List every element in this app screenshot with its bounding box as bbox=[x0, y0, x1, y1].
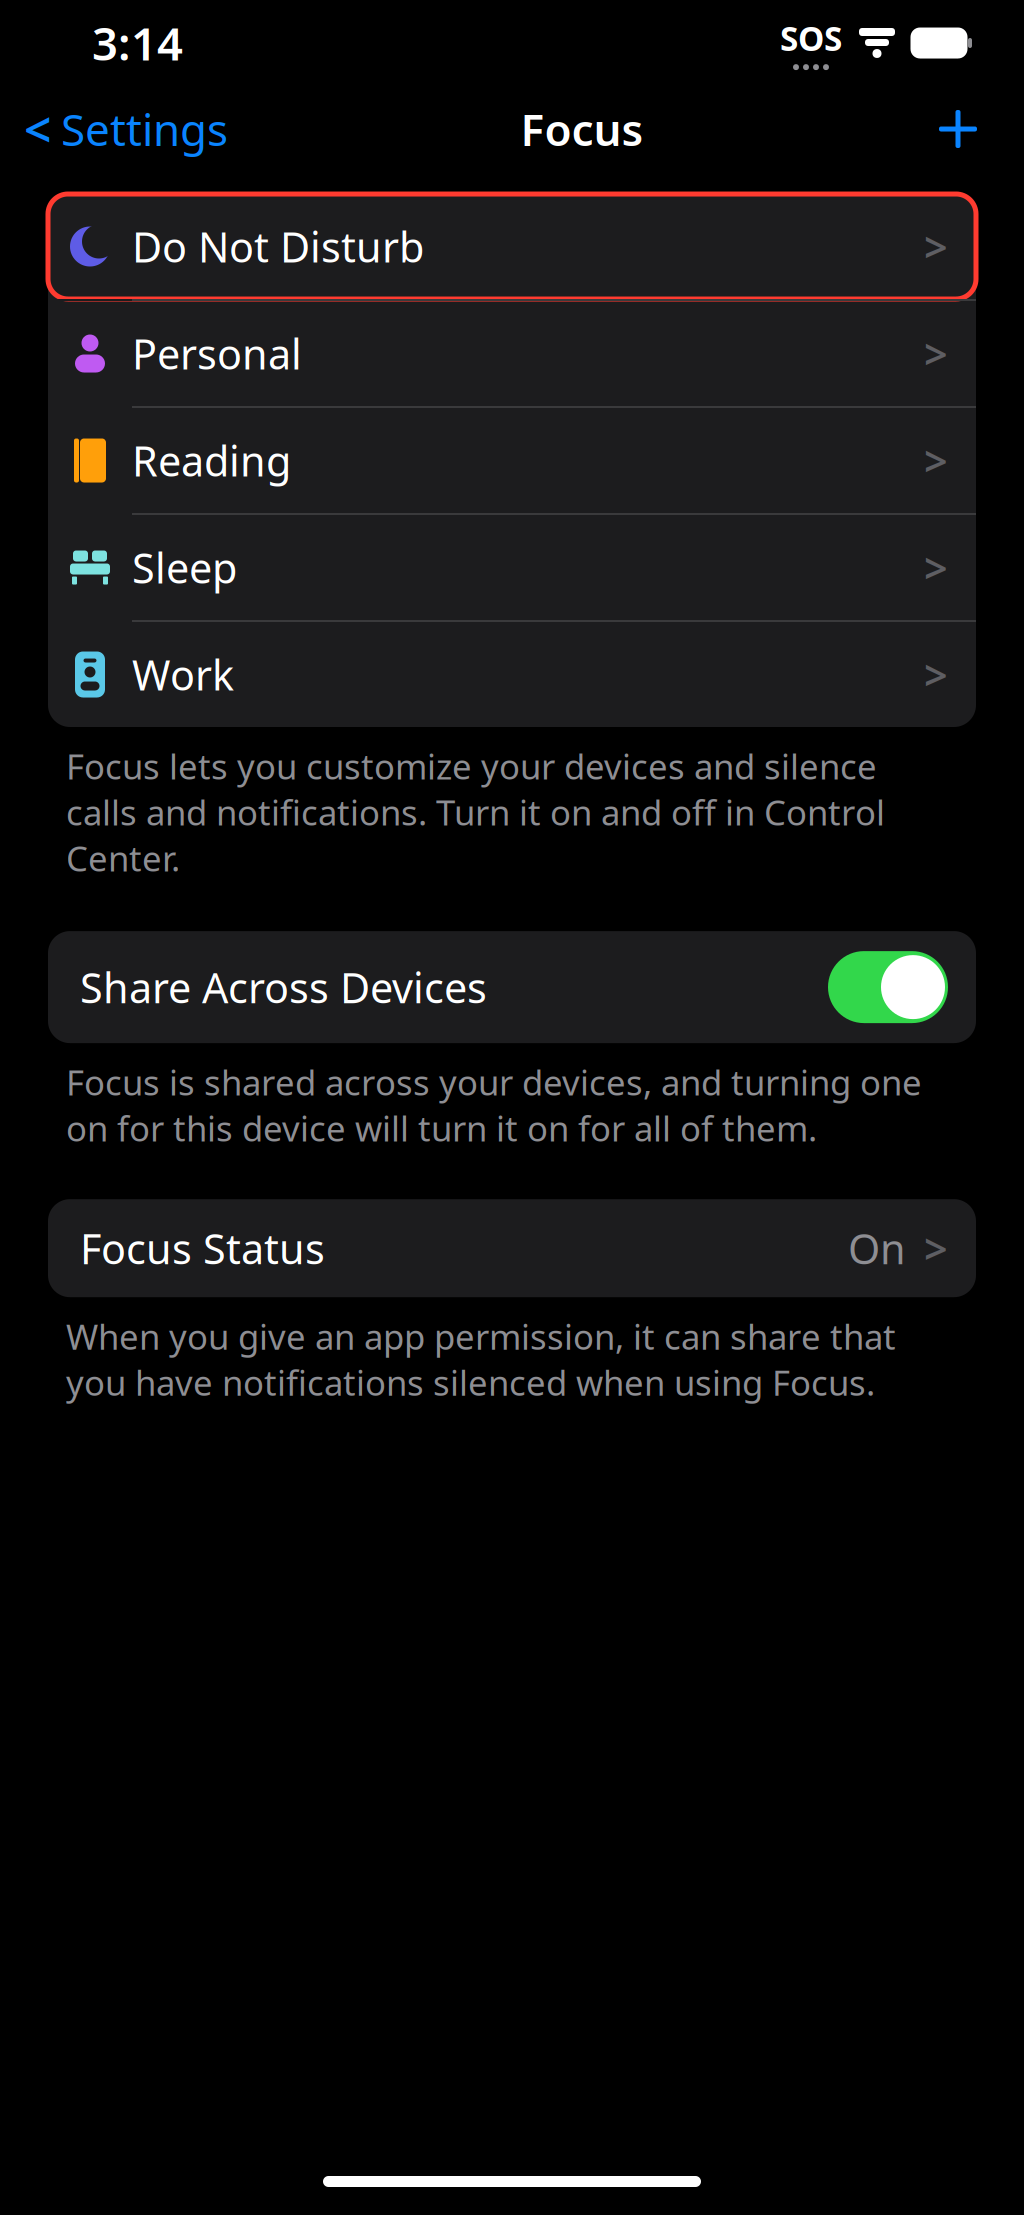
button[interactable]: Reading bbox=[48, 408, 976, 513]
staticText: Share Across Devices bbox=[80, 960, 487, 1015]
staticText: SOS bbox=[780, 16, 842, 60]
staticText: Personal bbox=[132, 326, 302, 381]
staticText: > bbox=[924, 1221, 948, 1276]
staticText: Reading bbox=[132, 433, 291, 488]
staticText: > bbox=[924, 326, 948, 381]
staticText: > bbox=[924, 219, 948, 274]
staticText: < bbox=[24, 97, 51, 161]
button[interactable]: Share Across Devices bbox=[48, 931, 976, 1043]
staticText: Focus Status bbox=[80, 1221, 325, 1276]
button[interactable]: Personal bbox=[48, 301, 976, 406]
staticText: > bbox=[924, 433, 948, 488]
staticText: Sleep bbox=[132, 540, 237, 595]
staticText: 3:14 bbox=[92, 13, 183, 73]
button[interactable]: Do Not Disturb bbox=[48, 194, 976, 299]
button[interactable]: Focus Status bbox=[48, 1199, 976, 1297]
button[interactable]: Sleep bbox=[48, 515, 976, 620]
staticText: When you give an app permission, it can … bbox=[66, 1313, 896, 1405]
staticText: Focus lets you customize your devices an… bbox=[66, 743, 885, 881]
staticText: Focus bbox=[520, 100, 643, 158]
button[interactable]: Add Focus bbox=[936, 99, 1024, 159]
staticText: Settings bbox=[61, 100, 228, 158]
staticText: Work bbox=[132, 647, 234, 702]
button[interactable]: < bbox=[0, 85, 228, 173]
staticText: On bbox=[848, 1221, 906, 1276]
button[interactable]: Work bbox=[48, 622, 976, 727]
staticText: > bbox=[924, 540, 948, 595]
staticText: > bbox=[924, 647, 948, 702]
staticText: Focus is shared across your devices, and… bbox=[66, 1059, 922, 1151]
staticText: Do Not Disturb bbox=[132, 219, 424, 274]
